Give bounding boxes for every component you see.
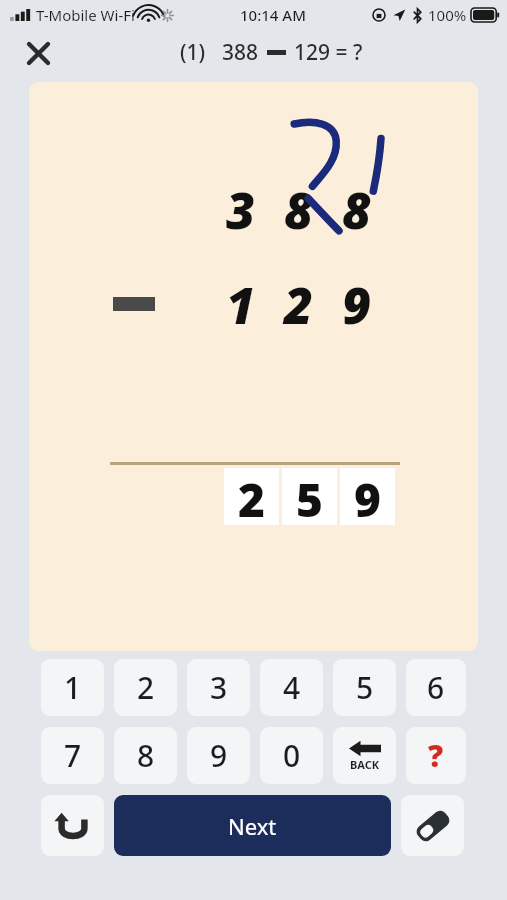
- staticText: T-Mobile Wi-Fi: [36, 5, 135, 25]
- button[interactable]: Eraser: [401, 795, 464, 856]
- button[interactable]: 7: [41, 727, 104, 784]
- button[interactable]: 2: [114, 659, 177, 716]
- button[interactable]: Undo: [41, 795, 104, 856]
- staticText: 8: [284, 176, 313, 244]
- button[interactable]: 6: [406, 659, 466, 716]
- staticText: 3: [210, 667, 228, 708]
- staticText: (1): [180, 38, 206, 67]
- button[interactable]: Back: [333, 727, 396, 784]
- button[interactable]: 1: [41, 659, 104, 716]
- button[interactable]: 3: [187, 659, 250, 716]
- staticText: 9: [210, 735, 228, 776]
- button[interactable]: Next: [114, 795, 391, 856]
- button[interactable]: 9: [340, 468, 395, 525]
- button[interactable]: 8: [114, 727, 177, 784]
- staticText: 10:14 AM: [240, 5, 306, 25]
- staticText: 4: [283, 667, 301, 708]
- staticText: 8: [342, 176, 371, 244]
- staticText: 100%: [428, 5, 467, 25]
- staticText: BACK: [350, 757, 380, 772]
- button[interactable]: 9: [187, 727, 250, 784]
- staticText: 388: [222, 38, 259, 67]
- staticText: 8: [137, 735, 155, 776]
- staticText: 6: [427, 667, 445, 708]
- button[interactable]: 4: [260, 659, 323, 716]
- button[interactable]: 2: [224, 468, 279, 525]
- staticText: 1: [64, 667, 82, 708]
- staticText: 5: [356, 667, 374, 708]
- staticText: 5: [296, 468, 323, 525]
- staticText: ?: [428, 735, 444, 776]
- button[interactable]: 5: [333, 659, 396, 716]
- button[interactable]: Help: [406, 727, 466, 784]
- staticText: 0: [283, 735, 301, 776]
- staticText: 7: [64, 735, 82, 776]
- button[interactable]: 5: [282, 468, 337, 525]
- staticText: Next: [228, 811, 277, 841]
- staticText: 9: [354, 468, 381, 525]
- staticText: 2: [284, 271, 313, 339]
- staticText: 9: [342, 271, 371, 339]
- staticText: 129 = ?: [294, 38, 363, 67]
- staticText: 1: [226, 271, 255, 339]
- staticText: 3: [226, 176, 255, 244]
- staticText: 2: [238, 468, 265, 525]
- button[interactable]: 0: [260, 727, 323, 784]
- staticText: 2: [137, 667, 155, 708]
- button[interactable]: Close: [16, 31, 60, 75]
